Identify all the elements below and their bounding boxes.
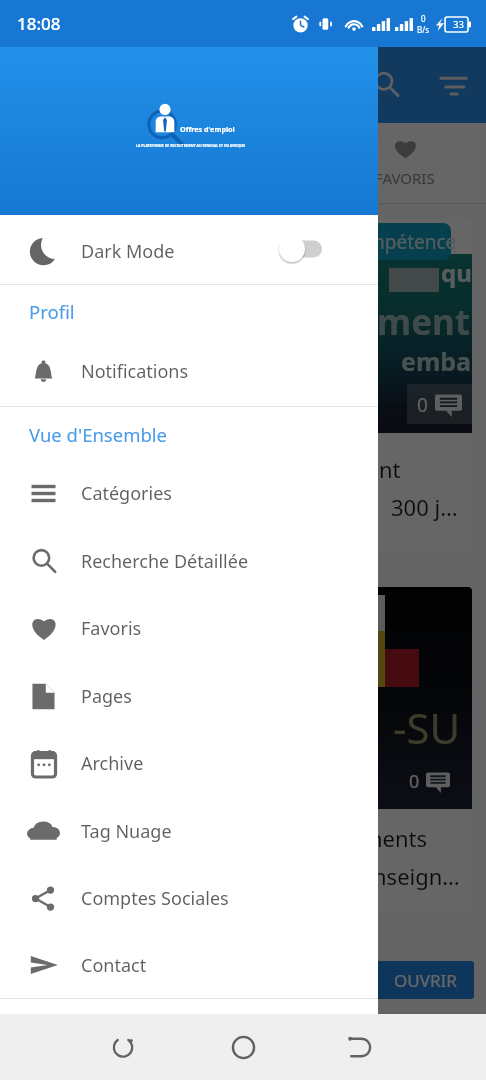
button[interactable]: Tag Nuage — [0, 798, 378, 864]
staticText: OUVRIR — [394, 969, 457, 992]
staticText: B/s — [417, 24, 430, 35]
button[interactable]: Search — [362, 60, 410, 108]
button[interactable]: Contact — [0, 932, 378, 998]
staticText: 33 — [453, 18, 464, 31]
staticText: Catégories — [81, 481, 172, 506]
staticText: nseign… — [373, 861, 460, 891]
button[interactable]: Comptes Sociales — [0, 865, 378, 931]
staticText: Pages — [81, 684, 132, 709]
staticText: Notifications — [81, 359, 189, 384]
staticText: Favoris — [81, 616, 142, 641]
staticText: 18:08 — [17, 12, 61, 35]
staticText: nt — [379, 454, 401, 484]
staticText: mpétence — [367, 229, 457, 255]
staticText: Contact — [81, 953, 147, 978]
staticText: Recherche Détaillée — [81, 549, 249, 574]
staticText: Archive — [81, 751, 144, 776]
button[interactable]: Dark Mode — [0, 218, 378, 284]
staticText: Tag Nuage — [81, 819, 172, 844]
button[interactable]: Notifications — [0, 338, 378, 404]
button[interactable]: Back — [99, 1023, 147, 1071]
staticText: 0 — [417, 392, 428, 418]
staticText: ment — [377, 298, 470, 346]
staticText: 300 j… — [391, 492, 458, 522]
button[interactable]: Favoris — [0, 595, 378, 661]
button[interactable]: Pages — [0, 663, 378, 729]
staticText: 0 — [421, 13, 426, 24]
button[interactable]: Recherche Détaillée — [0, 528, 378, 594]
staticText: Profil — [29, 299, 75, 324]
button[interactable]: Archive — [0, 730, 378, 796]
staticText: Offres d'emploi — [180, 124, 235, 134]
button[interactable]: Recent apps — [336, 1023, 384, 1071]
button[interactable]: OUVRIR — [226, 961, 474, 999]
button[interactable]: Catégories — [0, 460, 378, 526]
staticText: Dark Mode — [81, 239, 175, 264]
staticText: Vue d'Ensemble — [29, 422, 168, 447]
staticText: -SU — [393, 699, 461, 756]
staticText: nents — [369, 823, 428, 853]
button[interactable]: FAVORIS — [351, 123, 459, 203]
staticText: embau — [401, 344, 472, 378]
button[interactable]: Filter — [430, 63, 478, 111]
button[interactable]: Home — [219, 1023, 267, 1071]
staticText: Comptes Sociales — [81, 886, 229, 911]
staticText: qual — [441, 256, 472, 289]
button[interactable]: Toggle dark mode — [279, 227, 343, 271]
staticText: LA PLATEFORME DE RECRUTEMENT AU SENEGAL … — [136, 143, 246, 148]
staticText: FAVORIS — [375, 168, 435, 188]
staticText: 0 — [409, 769, 420, 794]
